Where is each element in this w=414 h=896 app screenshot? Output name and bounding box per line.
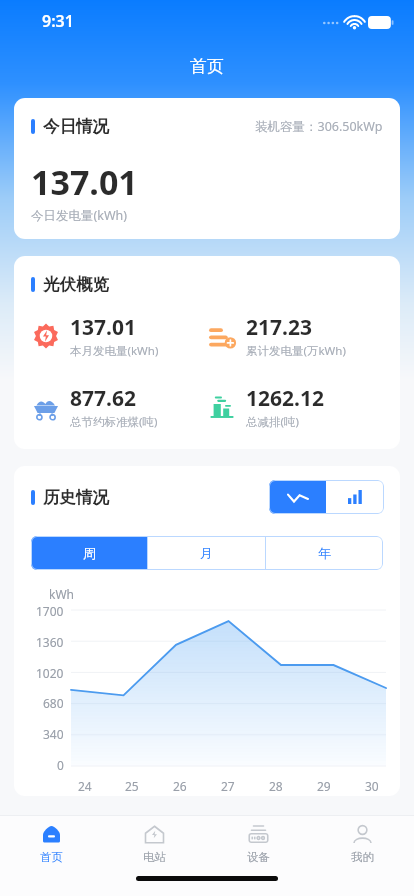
staticText: 累计发电量(万kWh) [246, 343, 346, 359]
button[interactable]: 月 [148, 536, 265, 570]
staticText: 周 [83, 545, 96, 561]
staticText: 1700 [36, 603, 64, 619]
staticText: 26 [173, 778, 187, 794]
button[interactable]: 217.23 [207, 313, 383, 359]
staticText: 本月发电量(kWh) [70, 343, 159, 359]
staticText: 年 [318, 545, 331, 561]
staticText: 今日情况 [43, 116, 109, 137]
staticText: 30 [365, 778, 379, 794]
button[interactable]: 年 [266, 536, 383, 570]
staticText: kWh [49, 586, 74, 602]
staticText: 总节约标准煤(吨) [70, 414, 158, 430]
staticText: 今日发电量(kWh) [31, 207, 128, 224]
staticText: 1360 [36, 634, 64, 650]
staticText: 首页 [40, 850, 63, 864]
staticText: 877.62 [70, 384, 136, 413]
staticText: 137.01 [31, 159, 138, 205]
staticText: 设备 [247, 850, 270, 864]
staticText: 首页 [190, 56, 224, 77]
button[interactable]: 1262.12 [207, 384, 383, 430]
staticText: 1020 [36, 665, 64, 681]
button[interactable]: Bar chart [326, 480, 384, 514]
button[interactable]: 我的 [310, 816, 414, 864]
staticText: 217.23 [246, 313, 312, 342]
staticText: 9:31 [42, 10, 74, 32]
staticText: 1262.12 [246, 384, 324, 413]
button[interactable]: 电站 [103, 816, 206, 864]
staticText: 27 [221, 778, 235, 794]
staticText: 137.01 [70, 313, 136, 342]
staticText: 24 [78, 778, 92, 794]
staticText: 340 [43, 726, 64, 742]
staticText: 680 [43, 695, 64, 711]
staticText: 历史情况 [43, 487, 109, 508]
staticText: 总减排(吨) [246, 414, 299, 430]
staticText: 29 [317, 778, 331, 794]
button[interactable]: 设备 [206, 816, 310, 864]
button[interactable]: 137.01 [31, 313, 207, 359]
staticText: 光伏概览 [43, 274, 109, 295]
staticText: 25 [125, 778, 139, 794]
button[interactable]: 首页 [0, 816, 103, 864]
staticText: 0 [57, 757, 64, 773]
button[interactable]: 周 [31, 536, 147, 570]
button[interactable]: Line chart [269, 480, 326, 514]
staticText: 月 [200, 545, 213, 561]
staticText: 我的 [351, 850, 374, 864]
staticText: 装机容量：306.50kWp [255, 118, 383, 135]
staticText: 28 [269, 778, 283, 794]
staticText: 电站 [143, 850, 166, 864]
button[interactable]: 877.62 [31, 384, 207, 430]
